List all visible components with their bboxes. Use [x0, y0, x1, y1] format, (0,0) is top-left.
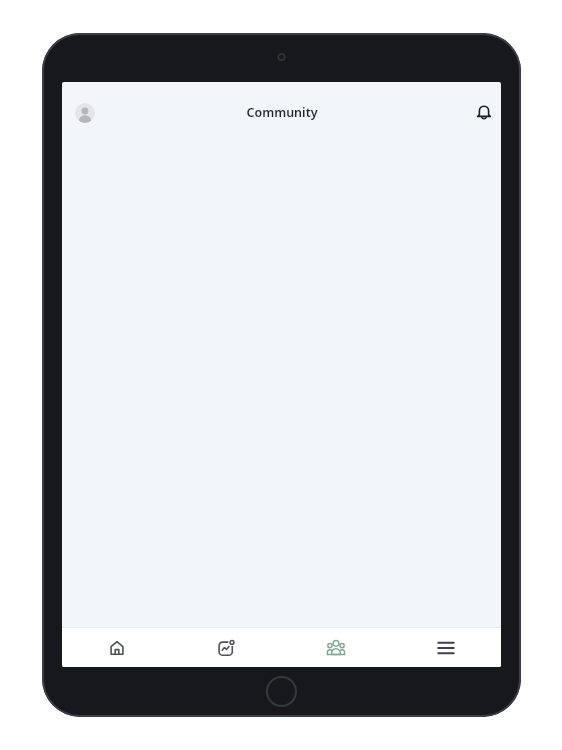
button[interactable]	[281, 628, 391, 667]
staticText: Community	[246, 104, 318, 121]
button[interactable]	[62, 628, 171, 667]
button[interactable]	[75, 103, 95, 123]
button[interactable]	[471, 100, 497, 126]
button[interactable]	[391, 628, 501, 667]
button[interactable]	[171, 628, 281, 667]
